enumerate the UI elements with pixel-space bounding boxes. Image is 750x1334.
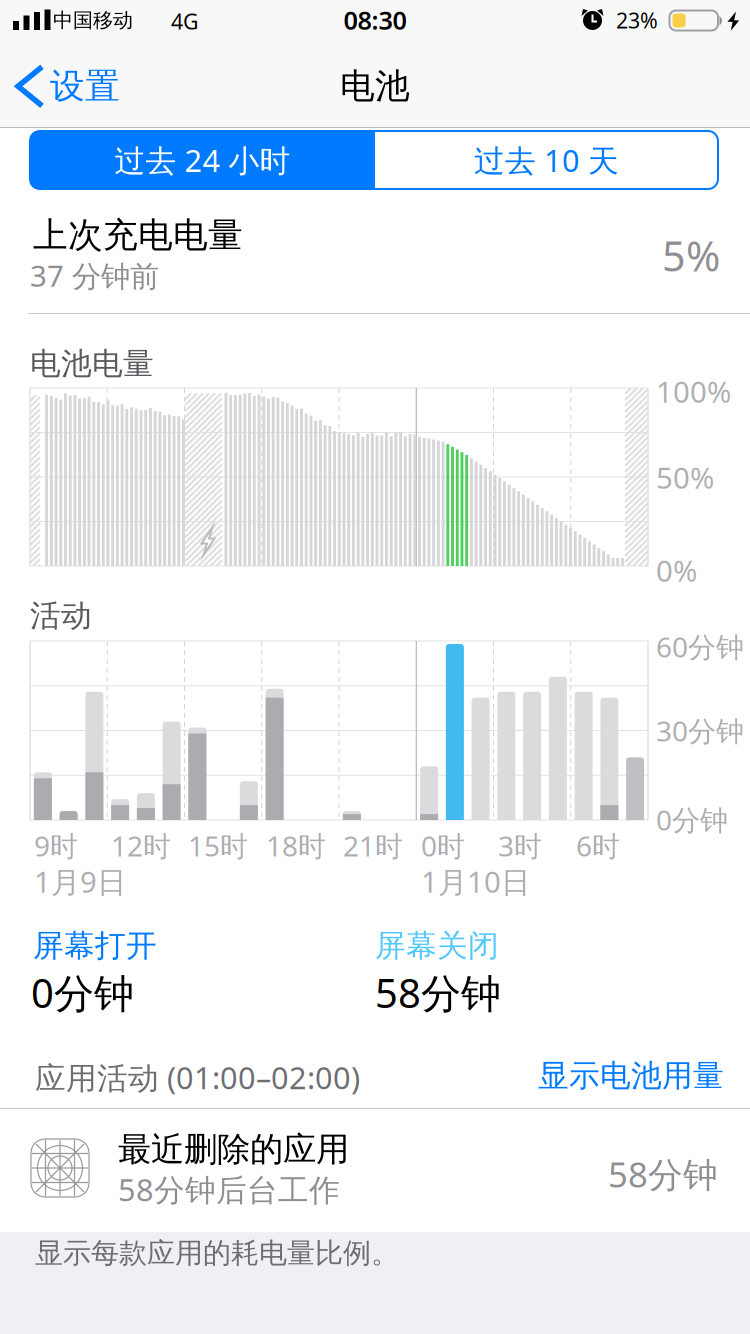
staticText: 58分钟后台工作 [118, 1169, 340, 1210]
staticText: 58分钟 [608, 1151, 718, 1197]
staticText: 显示电池用量 [538, 1057, 724, 1095]
staticText: 0分钟 [31, 966, 134, 1019]
staticText: 100% [656, 372, 731, 411]
button[interactable]: 显示电池用量 [538, 1057, 724, 1095]
staticText: 9时 [34, 827, 78, 864]
staticText: 电池 [340, 65, 410, 108]
staticText: 4G [171, 7, 199, 35]
staticText: 23% [616, 6, 658, 34]
staticText: 0时 [421, 827, 465, 864]
staticText: 过去 24 小时 [114, 140, 290, 180]
button[interactable]: 最近删除的应用 [0, 1109, 750, 1232]
button[interactable]: 设置 [18, 65, 120, 108]
staticText: 21时 [343, 827, 403, 864]
staticText: 最近删除的应用 [118, 1129, 349, 1170]
staticText: 5% [662, 228, 720, 283]
staticText: 显示每款应用的耗电量比例。 [35, 1236, 399, 1270]
staticText: 60分钟 [656, 628, 744, 665]
staticText: 1月9日 [34, 862, 126, 901]
staticText: 电池电量 [30, 345, 154, 383]
staticText: 15时 [188, 827, 248, 864]
staticText: 6时 [576, 827, 620, 864]
staticText: 08:30 [343, 3, 406, 37]
staticText: 应用活动 (01:00–02:00) [35, 1057, 360, 1098]
staticText: 12时 [111, 827, 171, 864]
staticText: 3时 [498, 827, 542, 864]
staticText: 中国移动 [53, 8, 133, 33]
staticText: 1月10日 [421, 862, 530, 901]
staticText: 0% [656, 551, 697, 590]
staticText: 0分钟 [656, 801, 728, 838]
staticText: 50% [656, 458, 714, 497]
staticText: 设置 [50, 65, 120, 108]
staticText: 屏幕打开 [33, 927, 157, 965]
staticText: 37 分钟前 [30, 256, 159, 295]
staticText: 过去 10 天 [474, 140, 619, 180]
staticText: 30分钟 [656, 712, 744, 749]
button[interactable]: 过去 24 小时 [30, 131, 375, 189]
staticText: 18时 [266, 827, 326, 864]
button[interactable]: 过去 10 天 [375, 131, 718, 189]
staticText: 屏幕关闭 [375, 927, 499, 965]
staticText: 58分钟 [375, 966, 501, 1019]
staticText: 活动 [30, 597, 92, 635]
staticText: 上次充电电量 [33, 214, 243, 257]
